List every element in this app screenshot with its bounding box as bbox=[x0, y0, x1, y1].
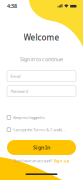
button[interactable]: Sign In bbox=[7, 140, 76, 155]
button[interactable]: Keep me logged in bbox=[7, 115, 76, 120]
button[interactable]: I accept the Terms & Conditions bbox=[7, 127, 76, 132]
staticText: 4:38 bbox=[7, 2, 17, 10]
staticText: Welcome bbox=[23, 32, 59, 43]
staticText: Don't have an account? bbox=[13, 158, 52, 163]
staticText: Sign up bbox=[54, 158, 70, 163]
staticText: Sign in to continue bbox=[20, 56, 63, 63]
staticText: Sign In bbox=[33, 144, 50, 151]
button[interactable]: Email bbox=[7, 71, 76, 82]
staticText: Password bbox=[10, 89, 27, 94]
staticText: Keep me logged in bbox=[13, 115, 44, 120]
button[interactable]: Sign up bbox=[54, 158, 70, 163]
staticText: Email bbox=[10, 74, 20, 79]
button[interactable]: Password bbox=[7, 86, 76, 97]
staticText: I accept the Terms & Conditions bbox=[13, 127, 65, 132]
